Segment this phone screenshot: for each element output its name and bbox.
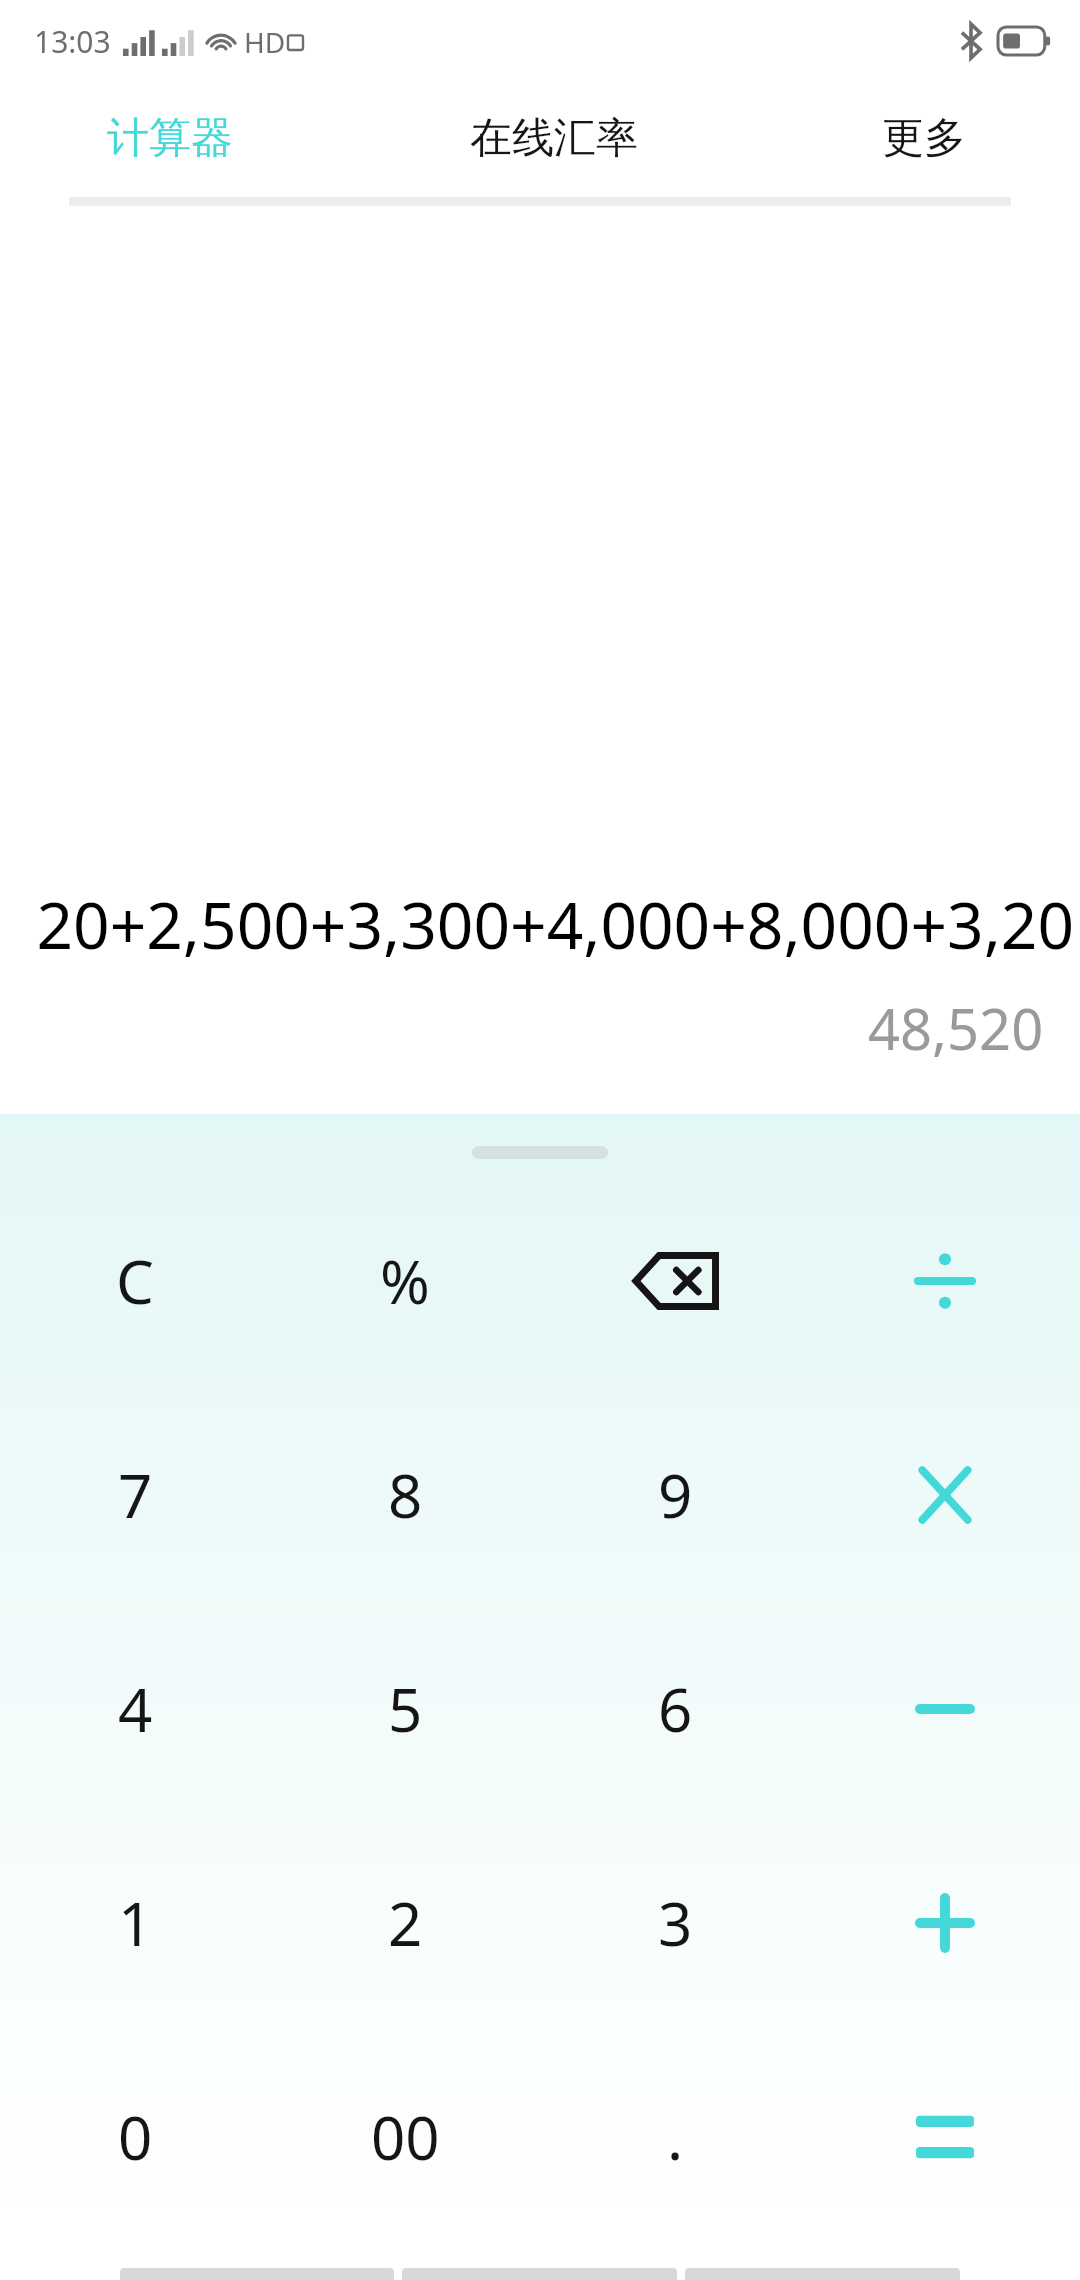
button[interactable]: 00 (270, 2030, 540, 2244)
button[interactable]: Backspace (540, 1174, 810, 1388)
staticText: 7 (118, 1454, 153, 1536)
staticText: 计算器 (107, 112, 233, 165)
button[interactable]: 6 (540, 1602, 810, 1816)
button[interactable]: 计算器 (0, 82, 340, 194)
staticText: 3 (658, 1882, 693, 1964)
button[interactable] (472, 1146, 608, 1159)
button[interactable]: Plus (810, 1816, 1080, 2030)
staticText: 20+2,500+3,300+4,000+8,000+3,200 (0, 881, 1074, 968)
button[interactable]: 4 (0, 1602, 270, 1816)
button[interactable]: 在线汇率 (340, 82, 767, 194)
staticText: 48,520 (868, 990, 1044, 1066)
staticText: 4 (118, 1668, 153, 1750)
staticText: C (116, 1240, 154, 1322)
staticText: HD (244, 23, 286, 61)
staticText: 更多 (882, 112, 966, 165)
button[interactable]: 3 (540, 1816, 810, 2030)
button[interactable]: Divide (810, 1174, 1080, 1388)
button[interactable]: % (270, 1174, 540, 1388)
button[interactable]: 7 (0, 1388, 270, 1602)
button[interactable]: Multiply (810, 1388, 1080, 1602)
button[interactable]: 9 (540, 1388, 810, 1602)
button[interactable]: 2 (270, 1816, 540, 2030)
button[interactable]: 5 (270, 1602, 540, 1816)
staticText: 0 (118, 2096, 153, 2178)
staticText: 2 (388, 1882, 423, 1964)
button[interactable]: 1 (0, 1816, 270, 2030)
staticText: 在线汇率 (470, 112, 638, 165)
button[interactable]: Equals (810, 2030, 1080, 2244)
button[interactable]: 8 (270, 1388, 540, 1602)
staticText: 9 (658, 1454, 693, 1536)
button[interactable]: 0 (0, 2030, 270, 2244)
staticText: % (380, 1240, 430, 1322)
staticText: 8 (388, 1454, 423, 1536)
staticText: 00 (371, 2096, 440, 2178)
staticText: 1 (118, 1882, 153, 1964)
button[interactable]: Minus (810, 1602, 1080, 1816)
button[interactable]: . (540, 2030, 810, 2244)
staticText: 6 (658, 1668, 693, 1750)
button[interactable]: 更多 (767, 82, 1080, 194)
staticText: 5 (388, 1668, 423, 1750)
staticText: . (667, 2096, 684, 2178)
staticText: 13:03 (34, 21, 111, 62)
button[interactable]: C (0, 1174, 270, 1388)
